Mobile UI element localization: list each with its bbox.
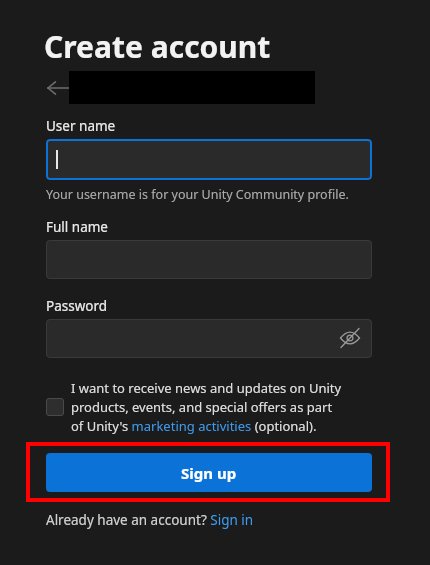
staticText: Your username is for your Unity Communit… xyxy=(46,186,349,203)
staticText: I want to receive news and updates on Un… xyxy=(71,379,347,435)
staticText: Full name xyxy=(46,218,108,236)
button[interactable]: Sign up xyxy=(46,453,372,492)
button[interactable]: Already have an account? Sign in xyxy=(46,511,254,529)
staticText: Already have an account? Sign in xyxy=(46,511,254,529)
button[interactable]: Show password xyxy=(336,324,364,352)
staticText: Password xyxy=(46,297,108,315)
button[interactable]: Back xyxy=(44,74,72,102)
button[interactable]: Receive news and updates xyxy=(46,398,64,416)
staticText: Sign up xyxy=(181,463,237,483)
staticText: User name xyxy=(46,117,116,135)
button[interactable] xyxy=(46,139,372,180)
button[interactable] xyxy=(46,240,372,279)
button[interactable] xyxy=(46,319,372,358)
staticText: Create account xyxy=(44,26,271,67)
